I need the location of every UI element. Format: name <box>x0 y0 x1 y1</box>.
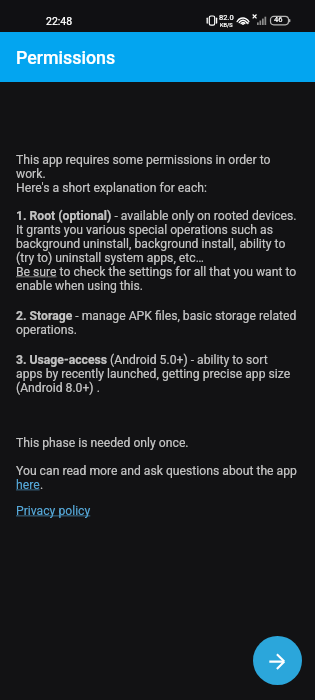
button[interactable]: Next <box>253 636 302 685</box>
staticText: 46 <box>274 15 283 24</box>
staticText: 2. Storage - manage APK files, basic sto… <box>16 309 297 337</box>
staticText: 82.0 <box>219 13 234 22</box>
staticText: 22:48 <box>46 15 73 27</box>
button[interactable]: Permissions <box>0 32 315 82</box>
staticText: This app requires some permissions in or… <box>16 153 297 293</box>
staticText: 3. Usage-access (Android 5.0+) - ability… <box>16 353 291 395</box>
staticText: This phase is needed only once. <box>16 436 189 450</box>
staticText: . <box>40 478 44 492</box>
staticText: KB/S <box>220 22 233 28</box>
button[interactable]: Privacy policy <box>16 504 91 518</box>
button[interactable]: here <box>16 478 40 492</box>
staticText: Permissions <box>16 47 116 68</box>
staticText: You can read more and ask questions abou… <box>16 464 297 478</box>
